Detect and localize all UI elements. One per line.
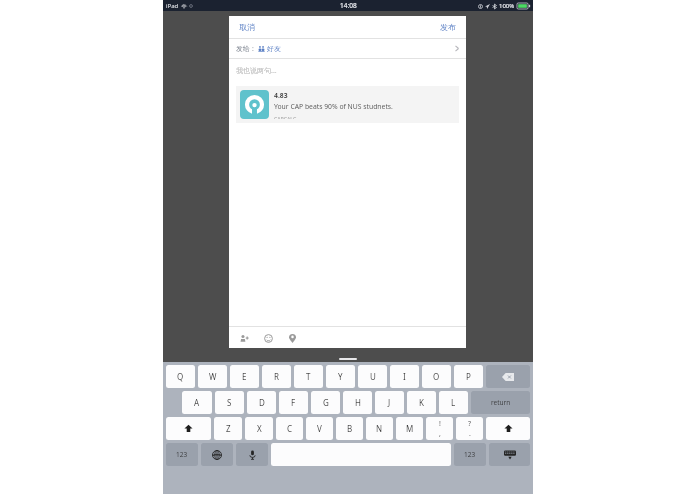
staticText: CAPCALC bbox=[274, 115, 297, 119]
staticText: D bbox=[259, 397, 265, 408]
staticText: 发给： bbox=[236, 44, 257, 53]
staticText: U bbox=[370, 371, 376, 382]
staticText: F bbox=[291, 397, 296, 408]
staticText: K bbox=[419, 397, 424, 408]
button[interactable]: L bbox=[439, 391, 468, 414]
button[interactable]: ! bbox=[426, 417, 453, 440]
staticText: T bbox=[306, 371, 311, 382]
button[interactable]: W bbox=[198, 365, 227, 388]
staticText: N bbox=[376, 423, 383, 434]
button[interactable]: X bbox=[245, 417, 273, 440]
staticText: S bbox=[227, 397, 232, 408]
button[interactable]: O bbox=[422, 365, 451, 388]
staticText: X bbox=[257, 423, 262, 434]
button[interactable]: 取消 bbox=[235, 20, 259, 34]
button[interactable]: ? bbox=[456, 417, 483, 440]
button[interactable]: G bbox=[311, 391, 340, 414]
button[interactable]: C bbox=[276, 417, 303, 440]
button[interactable]: Dictation bbox=[236, 443, 268, 466]
button[interactable]: Location bbox=[284, 330, 300, 346]
staticText: V bbox=[317, 423, 322, 434]
staticText: 100% bbox=[499, 2, 515, 10]
staticText: J bbox=[388, 397, 391, 408]
staticText: 4.83 bbox=[274, 91, 288, 100]
button[interactable]: Change keyboard bbox=[201, 443, 233, 466]
button[interactable]: F bbox=[279, 391, 308, 414]
button[interactable]: D bbox=[247, 391, 276, 414]
button[interactable]: A bbox=[182, 391, 212, 414]
button[interactable]: J bbox=[375, 391, 404, 414]
button[interactable]: Hide keyboard bbox=[489, 443, 530, 466]
button[interactable]: B bbox=[336, 417, 363, 440]
staticText: , bbox=[439, 429, 441, 439]
staticText: P bbox=[466, 371, 471, 382]
staticText: B bbox=[347, 423, 353, 434]
staticText: 好友 bbox=[267, 44, 281, 53]
staticText: 123 bbox=[176, 450, 188, 459]
staticText: 123 bbox=[464, 450, 476, 459]
staticText: iPad bbox=[166, 2, 179, 10]
staticText: ! bbox=[439, 419, 441, 429]
staticText: Your CAP beats 90% of NUS studnets. bbox=[274, 102, 393, 111]
staticText: ? bbox=[468, 419, 472, 429]
staticText: . bbox=[469, 429, 471, 439]
button[interactable]: 123 bbox=[166, 443, 198, 466]
staticText: E bbox=[242, 371, 247, 382]
button[interactable]: return bbox=[471, 391, 530, 414]
staticText: Y bbox=[338, 371, 343, 382]
staticText: 14:08 bbox=[340, 1, 357, 10]
staticText: Q bbox=[177, 371, 184, 382]
button[interactable]: Q bbox=[166, 365, 195, 388]
button[interactable]: P bbox=[454, 365, 483, 388]
button[interactable]: M bbox=[396, 417, 423, 440]
staticText: W bbox=[209, 371, 217, 382]
button[interactable]: U bbox=[358, 365, 387, 388]
staticText: 取消 bbox=[239, 22, 255, 32]
staticText: R bbox=[274, 371, 279, 382]
staticText: M bbox=[406, 423, 414, 434]
staticText: G bbox=[323, 397, 329, 408]
button[interactable]: N bbox=[366, 417, 393, 440]
staticText: H bbox=[355, 397, 361, 408]
button[interactable]: 123 bbox=[454, 443, 486, 466]
staticText: return bbox=[491, 398, 511, 407]
button[interactable]: E bbox=[230, 365, 259, 388]
button[interactable]: Z bbox=[214, 417, 242, 440]
staticText: C bbox=[287, 423, 293, 434]
button[interactable]: 发布 bbox=[436, 20, 460, 34]
staticText: O bbox=[433, 371, 440, 382]
button[interactable]: Mention friend bbox=[236, 330, 252, 346]
staticText: A bbox=[194, 397, 200, 408]
staticText: 我也说两句... bbox=[236, 66, 277, 76]
button[interactable]: Shift bbox=[166, 417, 211, 440]
staticText: I bbox=[403, 371, 406, 382]
button[interactable]: 发给： bbox=[229, 39, 466, 58]
staticText: 发布 bbox=[440, 22, 456, 32]
button[interactable]: Y bbox=[326, 365, 355, 388]
button[interactable]: S bbox=[215, 391, 244, 414]
button[interactable]: H bbox=[343, 391, 372, 414]
button[interactable]: 4.83 bbox=[236, 86, 459, 123]
button[interactable]: R bbox=[262, 365, 291, 388]
staticText: Z bbox=[226, 423, 231, 434]
staticText: L bbox=[451, 397, 456, 408]
button[interactable]: Emoji bbox=[260, 330, 276, 346]
button[interactable]: Backspace bbox=[486, 365, 530, 388]
button[interactable]: I bbox=[390, 365, 419, 388]
button[interactable]: Shift bbox=[486, 417, 530, 440]
button[interactable]: T bbox=[294, 365, 323, 388]
button[interactable]: K bbox=[407, 391, 436, 414]
button[interactable]: V bbox=[306, 417, 333, 440]
